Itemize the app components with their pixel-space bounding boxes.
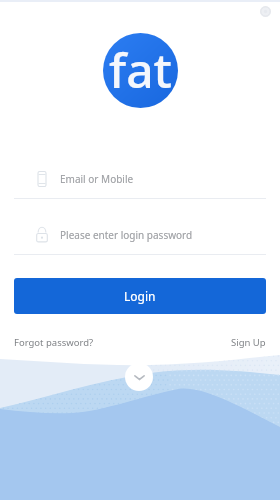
button[interactable]: Login	[14, 278, 266, 314]
button[interactable]: Sign Up	[231, 336, 266, 349]
button[interactable]: Forgot password?	[14, 336, 94, 349]
staticText: Login	[124, 288, 156, 304]
button[interactable]: Settings	[260, 6, 271, 17]
staticText: Email or Mobile	[60, 172, 134, 186]
button[interactable]: Expand	[125, 363, 153, 391]
staticText: fat	[109, 37, 172, 102]
staticText: Please enter login password	[60, 228, 193, 242]
